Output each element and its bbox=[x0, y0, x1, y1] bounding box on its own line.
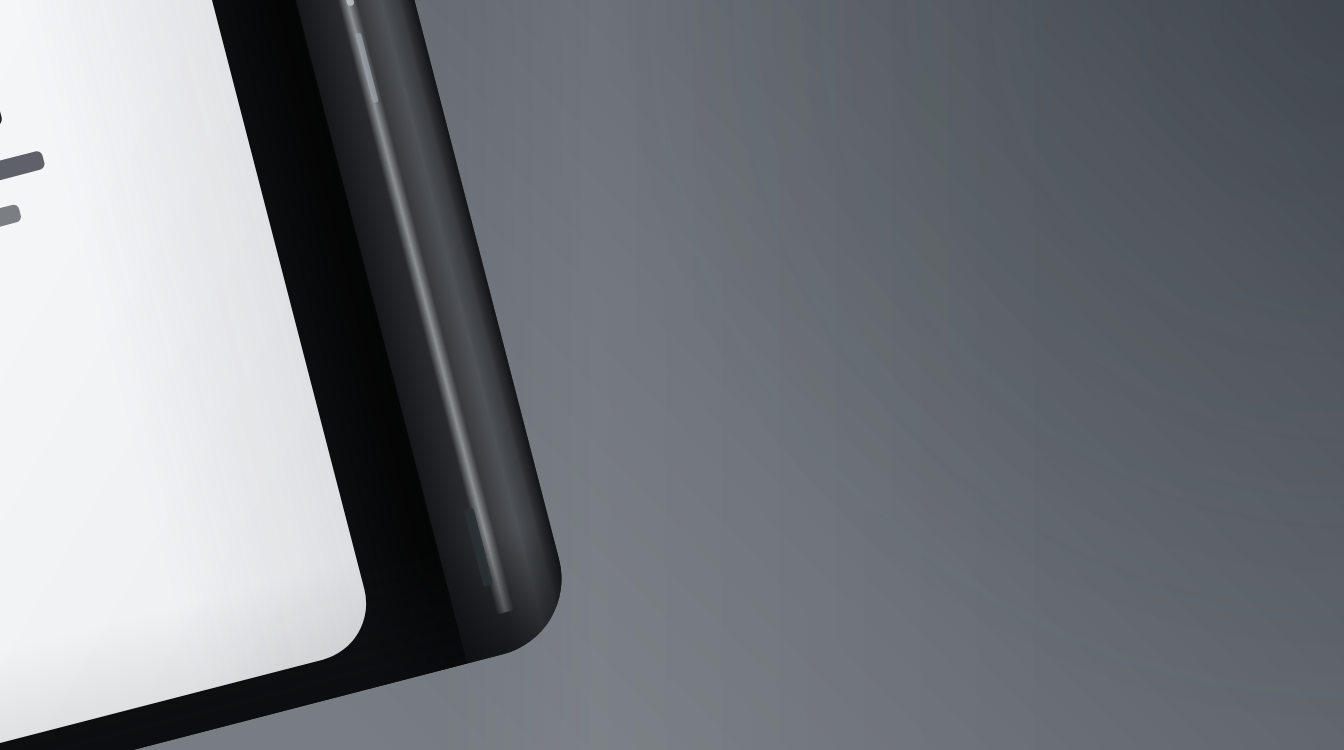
button[interactable]: Phone showing a document bbox=[0, 0, 1344, 750]
